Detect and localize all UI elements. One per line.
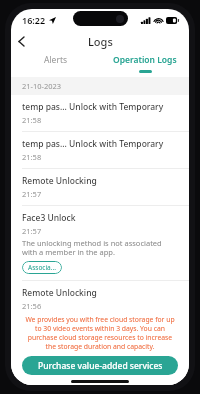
staticText: The unlocking method is not associated w… — [22, 238, 178, 258]
staticText: 21:57 — [22, 189, 42, 199]
staticText: 21:58 — [22, 115, 42, 125]
button[interactable]: temp pas... Unlock with Temporary Passwo… — [11, 132, 189, 168]
button[interactable]: Remote Unlocking — [11, 281, 189, 315]
staticText: Purchase value-added services — [38, 360, 163, 372]
staticText: 21:58 — [22, 152, 42, 162]
staticText: Remote Unlocking — [22, 175, 97, 187]
staticText: 21-10-2023 — [22, 81, 62, 91]
staticText: Alerts — [44, 54, 68, 66]
staticText: Remote Unlocking — [22, 287, 97, 299]
button[interactable]: Remote Unlocking — [11, 169, 189, 205]
button[interactable]: Operation Logs — [100, 51, 189, 77]
button[interactable]: Associa... — [22, 261, 62, 274]
staticText: Face3 Unlock — [22, 212, 76, 224]
button[interactable]: Purchase value-added services — [22, 356, 178, 375]
button[interactable]: temp pas... Unlock with Temporary Passwo… — [11, 95, 189, 131]
button[interactable]: Alerts — [11, 51, 100, 77]
staticText: Operation Logs — [113, 54, 177, 66]
button[interactable]: Back — [11, 31, 31, 51]
staticText: 21:57 — [22, 226, 42, 236]
staticText: Associa... — [28, 263, 56, 272]
staticText: 21:56 — [22, 301, 42, 309]
staticText: We provides you with free cloud storage … — [22, 315, 178, 351]
button[interactable]: Face3 Unlock — [11, 206, 189, 280]
staticText: 16:22 — [22, 14, 46, 26]
staticText: Logs — [88, 34, 113, 49]
staticText: temp pas... Unlock with Temporary Passwo… — [22, 138, 178, 150]
staticText: temp pas... Unlock with Temporary Passwo… — [22, 101, 178, 113]
